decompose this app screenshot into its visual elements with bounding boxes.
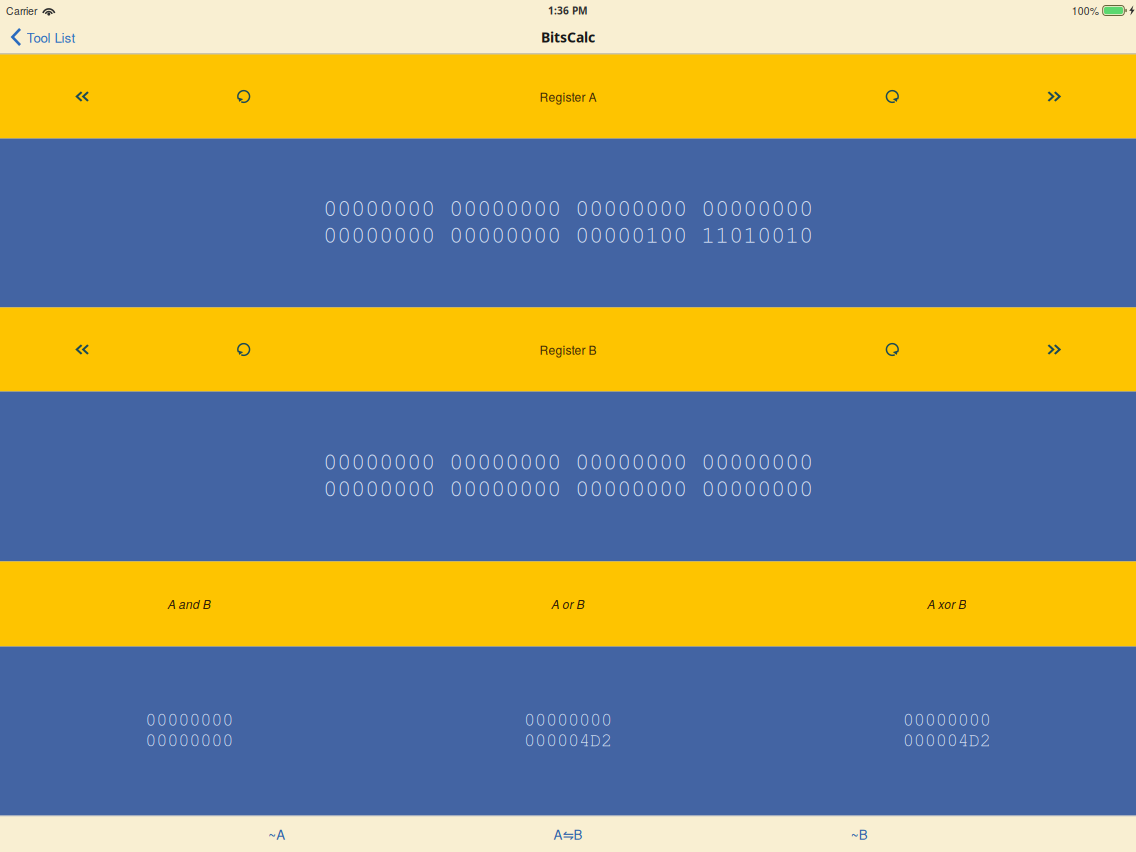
button[interactable]: Rotate Register B left	[218, 327, 270, 371]
staticText: 00000000	[145, 728, 233, 751]
staticText: ~A	[268, 824, 285, 844]
staticText: A xor B	[927, 595, 966, 612]
staticText: 00000000 00000000 00000000 00000000	[323, 473, 813, 502]
staticText: 00000000	[524, 708, 612, 730]
button[interactable]: ~A	[249, 816, 305, 851]
staticText: 000004D2	[903, 728, 991, 751]
staticText: Carrier	[6, 3, 37, 18]
button[interactable]: A⇋B	[540, 816, 596, 851]
staticText: ~B	[851, 824, 868, 844]
button[interactable]: A xor B	[757, 561, 1136, 646]
staticText: 00000000	[903, 708, 991, 730]
button[interactable]: Tool List	[0, 20, 88, 53]
staticText: Register A	[539, 88, 596, 105]
staticText: 00000000 00000000 00000100 11010010	[323, 220, 813, 249]
button[interactable]: Rotate Register A right	[866, 74, 918, 118]
staticText: A⇋B	[553, 824, 582, 844]
staticText: 100%	[1072, 3, 1099, 18]
staticText: A or B	[551, 595, 584, 612]
button[interactable]: Rotate Register A left	[218, 74, 270, 118]
button[interactable]: A and B	[0, 561, 379, 646]
staticText: 000004D2	[524, 728, 612, 751]
staticText: 00000000 00000000 00000000 00000000	[323, 193, 813, 222]
staticText: 00000000	[145, 708, 233, 730]
button[interactable]: Shift Register B left	[55, 327, 107, 371]
button[interactable]: ~B	[831, 816, 887, 851]
button[interactable]: Rotate Register B right	[866, 327, 918, 371]
staticText: BitsCalc	[541, 27, 595, 46]
staticText: 00000000 00000000 00000000 00000000	[323, 447, 813, 475]
staticText: Register B	[539, 341, 596, 358]
button[interactable]: Shift Register A right	[1029, 74, 1081, 118]
button[interactable]: Shift Register A left	[55, 74, 107, 118]
staticText: Tool List	[27, 27, 76, 47]
button[interactable]: A or B	[379, 561, 757, 646]
button[interactable]: Shift Register B right	[1029, 327, 1081, 371]
staticText: A and B	[168, 595, 211, 612]
staticText: 1:36 PM	[548, 4, 588, 17]
